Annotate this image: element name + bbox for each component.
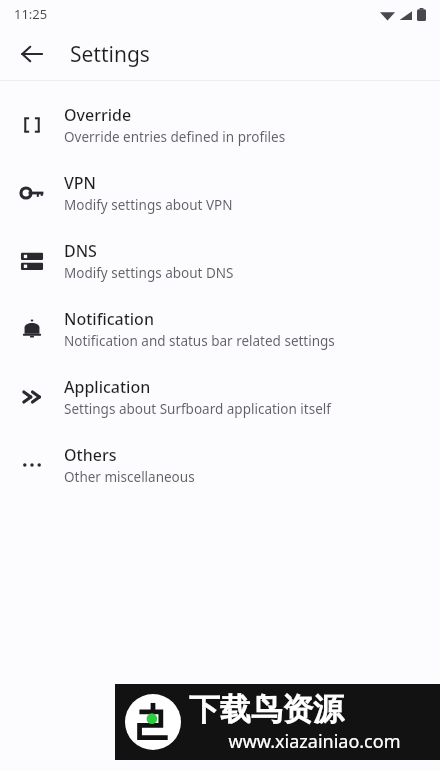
button[interactable]: VPN <box>0 159 440 227</box>
staticText: VPN <box>64 172 97 194</box>
button[interactable]: Back <box>8 30 56 78</box>
staticText: Settings <box>70 40 150 69</box>
staticText: Settings about Surfboard application its… <box>64 400 331 418</box>
staticText: Override <box>64 104 132 126</box>
staticText: Other miscellaneous <box>64 468 195 486</box>
staticText: Override entries defined in profiles <box>64 128 286 146</box>
button[interactable]: Notification <box>0 295 440 363</box>
staticText: DNS <box>64 240 97 262</box>
staticText: www.xiazainiao.com <box>189 729 440 754</box>
staticText: 11:25 <box>14 5 48 23</box>
button[interactable]: DNS <box>0 227 440 295</box>
staticText: Notification <box>64 308 154 330</box>
staticText: Notification and status bar related sett… <box>64 332 335 350</box>
button[interactable]: Others <box>0 431 440 499</box>
staticText: Application <box>64 376 151 398</box>
button[interactable]: Application <box>0 363 440 431</box>
button[interactable]: Override <box>0 91 440 159</box>
staticText: Modify settings about DNS <box>64 264 234 282</box>
staticText: 下载鸟资源 <box>189 690 344 729</box>
staticText: Others <box>64 444 117 466</box>
staticText: Modify settings about VPN <box>64 196 233 214</box>
